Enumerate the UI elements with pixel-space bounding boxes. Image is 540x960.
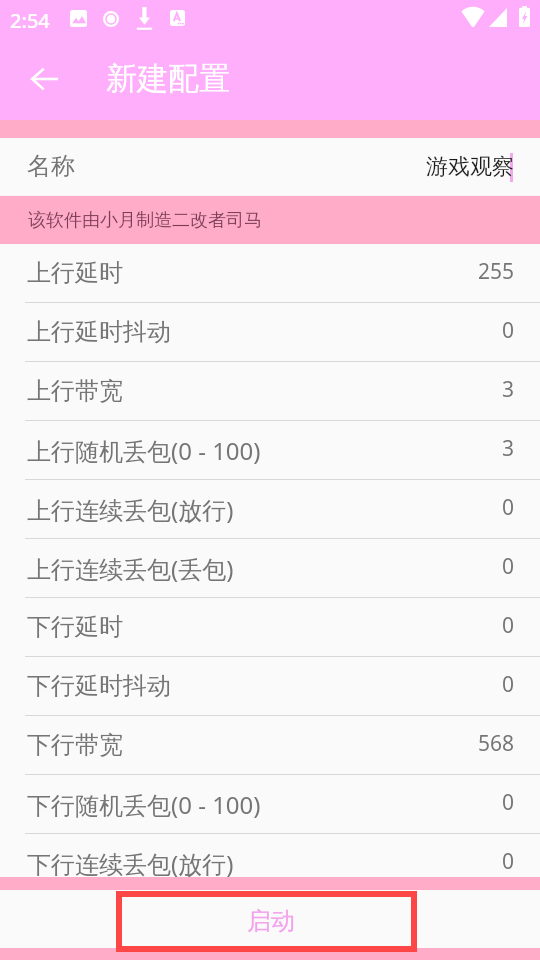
staticText: 上行连续丢包(丢包) <box>27 552 234 585</box>
button[interactable]: 启动 <box>122 897 411 946</box>
button[interactable]: 下行连续丢包(放行) <box>0 834 540 892</box>
button[interactable]: 下行延时抖动 <box>0 657 540 715</box>
button[interactable]: 下行延时 <box>0 598 540 656</box>
staticText: 下行延时抖动 <box>27 671 171 701</box>
staticText: 0 <box>502 788 515 817</box>
staticText: 568 <box>478 729 515 758</box>
staticText: 下行连续丢包(放行) <box>27 847 234 880</box>
staticText: 上行连续丢包(放行) <box>27 493 234 526</box>
staticText: 上行随机丢包(0 - 100) <box>27 434 261 467</box>
button[interactable]: 上行延时 <box>0 244 540 302</box>
button[interactable]: 上行连续丢包(放行) <box>0 480 540 538</box>
staticText: 名称 <box>27 151 75 181</box>
staticText: 游戏观察 <box>426 153 514 181</box>
button[interactable]: 上行带宽 <box>0 362 540 420</box>
staticText: 上行延时 <box>27 258 123 288</box>
button[interactable]: 上行随机丢包(0 - 100) <box>0 421 540 479</box>
staticText: 下行带宽 <box>27 730 123 760</box>
staticText: 255 <box>478 257 515 286</box>
staticText: 0 <box>502 847 515 876</box>
staticText: 上行带宽 <box>27 376 123 406</box>
staticText: 2:54 <box>10 7 50 34</box>
button[interactable]: 名称 <box>0 138 540 195</box>
button[interactable]: 上行延时抖动 <box>0 303 540 361</box>
staticText: 0 <box>502 316 515 345</box>
staticText: 3 <box>502 375 515 404</box>
staticText: 0 <box>502 670 515 699</box>
staticText: 0 <box>502 611 515 640</box>
staticText: 0 <box>502 552 515 581</box>
staticText: 3 <box>502 434 515 463</box>
button[interactable]: 上行连续丢包(丢包) <box>0 539 540 597</box>
staticText: 该软件由小月制造二改者司马 <box>28 209 262 232</box>
staticText: 0 <box>502 493 515 522</box>
staticText: 下行随机丢包(0 - 100) <box>27 788 261 821</box>
staticText: 上行延时抖动 <box>27 317 171 347</box>
button[interactable]: Back <box>21 55 69 103</box>
staticText: 启动 <box>247 906 295 936</box>
button[interactable]: 下行随机丢包(0 - 100) <box>0 775 540 833</box>
staticText: 新建配置 <box>106 59 230 98</box>
button[interactable]: 下行带宽 <box>0 716 540 774</box>
staticText: 下行延时 <box>27 612 123 642</box>
